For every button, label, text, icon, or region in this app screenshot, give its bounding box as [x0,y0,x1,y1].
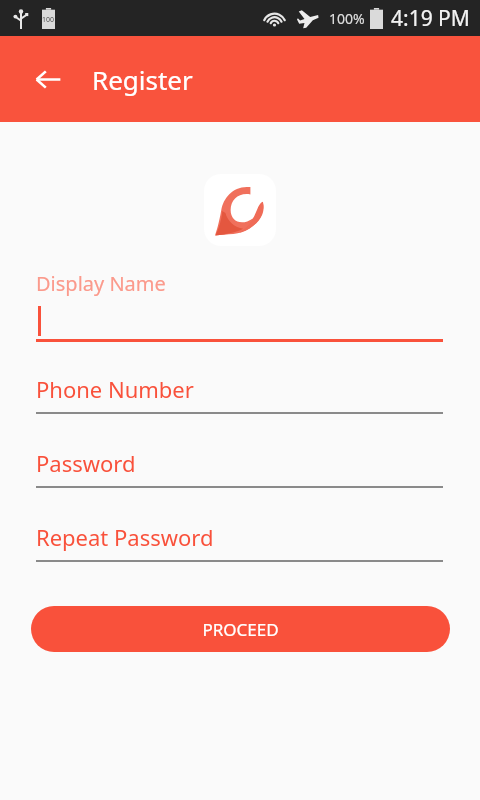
button[interactable]: Repeat Password [0,522,480,562]
staticText: Register [92,62,193,97]
button[interactable]: Display Name [0,270,480,342]
button[interactable]: Phone Number [0,374,480,414]
staticText: Phone Number [36,374,194,404]
staticText: 4:19 PM [391,4,470,33]
staticText: PROCEED [202,618,279,641]
button[interactable]: Password [0,448,480,488]
staticText: Display Name [36,270,166,297]
button[interactable]: PROCEED [31,606,450,652]
staticText: 100% [329,9,365,28]
staticText: 100 [42,15,55,25]
staticText: Password [36,448,136,478]
button[interactable]: Back [24,55,72,103]
staticText: Repeat Password [36,522,214,552]
